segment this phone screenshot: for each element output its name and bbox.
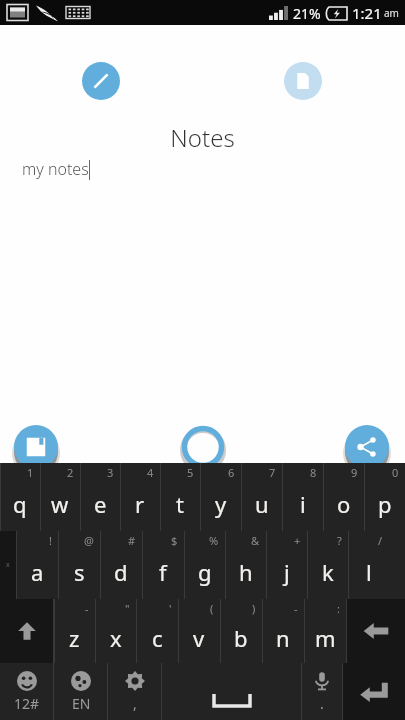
staticText: -	[85, 601, 89, 616]
staticText: +	[294, 533, 301, 548]
button[interactable]: Edit note	[82, 62, 120, 100]
staticText: g	[198, 557, 212, 587]
button[interactable]: 6	[200, 463, 241, 531]
button[interactable]: 7	[241, 463, 282, 531]
staticText: 3	[107, 465, 114, 480]
button[interactable]: Voice input	[302, 663, 342, 720]
staticText: 9	[351, 465, 358, 480]
button[interactable]: Record	[181, 425, 225, 469]
button[interactable]: Language	[54, 663, 107, 720]
staticText: o	[337, 489, 351, 519]
staticText: h	[239, 557, 253, 587]
staticText: #	[128, 533, 136, 548]
button[interactable]: Language switch	[0, 531, 16, 599]
staticText: y	[215, 489, 227, 519]
staticText: t	[176, 489, 184, 519]
staticText: 7	[269, 465, 276, 480]
staticText: i	[300, 489, 306, 519]
staticText: 5	[187, 465, 194, 480]
button[interactable]: Symbols	[0, 663, 53, 720]
staticText: w	[51, 489, 69, 519]
staticText: 1	[27, 465, 34, 480]
staticText: b	[234, 623, 248, 653]
staticText: !	[49, 533, 52, 548]
staticText: u	[255, 489, 269, 519]
button[interactable]: 0	[364, 463, 405, 531]
staticText: "	[125, 601, 130, 616]
button[interactable]: :	[304, 599, 346, 663]
button[interactable]: New note	[284, 62, 322, 100]
button[interactable]: Enter	[343, 663, 405, 720]
staticText: z	[69, 623, 80, 653]
button[interactable]: $	[142, 531, 184, 599]
staticText: my notes	[22, 158, 89, 180]
staticText: a	[31, 557, 44, 587]
staticText: l	[366, 557, 372, 587]
button[interactable]: Shift	[0, 599, 53, 663]
button[interactable]: +	[266, 531, 307, 599]
button[interactable]: &	[225, 531, 266, 599]
staticText: q	[13, 489, 27, 519]
staticText: am	[384, 6, 399, 20]
button[interactable]: -	[54, 599, 95, 663]
staticText: )	[252, 601, 256, 616]
staticText: r	[135, 489, 145, 519]
staticText: (	[210, 601, 214, 616]
button[interactable]: -	[262, 599, 304, 663]
button[interactable]: Save note	[10, 421, 62, 473]
button[interactable]: 5	[160, 463, 200, 531]
staticText: $	[171, 533, 178, 548]
staticText: x	[6, 560, 10, 570]
button[interactable]: '	[136, 599, 178, 663]
button[interactable]: Settings	[108, 663, 161, 720]
button[interactable]: (	[178, 599, 220, 663]
staticText: 1:21	[352, 3, 382, 23]
button[interactable]: @	[58, 531, 100, 599]
staticText: d	[114, 557, 128, 587]
staticText: m	[315, 623, 336, 653]
staticText: 4	[147, 465, 154, 480]
button[interactable]: 4	[120, 463, 160, 531]
staticText: /	[378, 533, 383, 548]
button[interactable]: %	[184, 531, 225, 599]
staticText: '	[169, 601, 172, 616]
button[interactable]: 2	[40, 463, 80, 531]
staticText: .	[320, 694, 324, 713]
staticText: %	[209, 533, 219, 548]
button[interactable]: 8	[282, 463, 323, 531]
button[interactable]: 1	[0, 463, 40, 531]
button[interactable]: !	[16, 531, 58, 599]
staticText: e	[94, 489, 107, 519]
button[interactable]: )	[220, 599, 262, 663]
staticText: EN	[72, 694, 91, 713]
staticText: 6	[228, 465, 235, 480]
staticText: 12#	[14, 694, 40, 713]
button[interactable]: "	[95, 599, 136, 663]
staticText: j	[284, 557, 290, 587]
button[interactable]: 9	[323, 463, 364, 531]
button[interactable]: Backspace	[347, 599, 405, 663]
staticText: f	[159, 557, 167, 587]
staticText: ,	[133, 694, 137, 713]
button[interactable]: Space	[162, 663, 301, 720]
staticText: ?	[337, 533, 342, 548]
staticText: s	[74, 557, 85, 587]
button[interactable]: /	[348, 531, 389, 599]
staticText: p	[378, 489, 392, 519]
staticText: 21%	[293, 4, 321, 23]
staticText: -	[294, 601, 298, 616]
button[interactable]: 3	[80, 463, 120, 531]
staticText: &	[251, 533, 260, 548]
button[interactable]: #	[100, 531, 142, 599]
staticText: v	[193, 623, 205, 653]
staticText: 2	[67, 465, 74, 480]
button[interactable]: Share note	[341, 421, 393, 473]
staticText: c	[152, 623, 163, 653]
staticText: x	[110, 623, 122, 653]
staticText: @	[84, 533, 94, 548]
staticText: 0	[392, 465, 399, 480]
staticText: n	[276, 623, 290, 653]
button[interactable]: ?	[307, 531, 348, 599]
staticText: 8	[310, 465, 317, 480]
staticText: Notes	[0, 121, 405, 154]
